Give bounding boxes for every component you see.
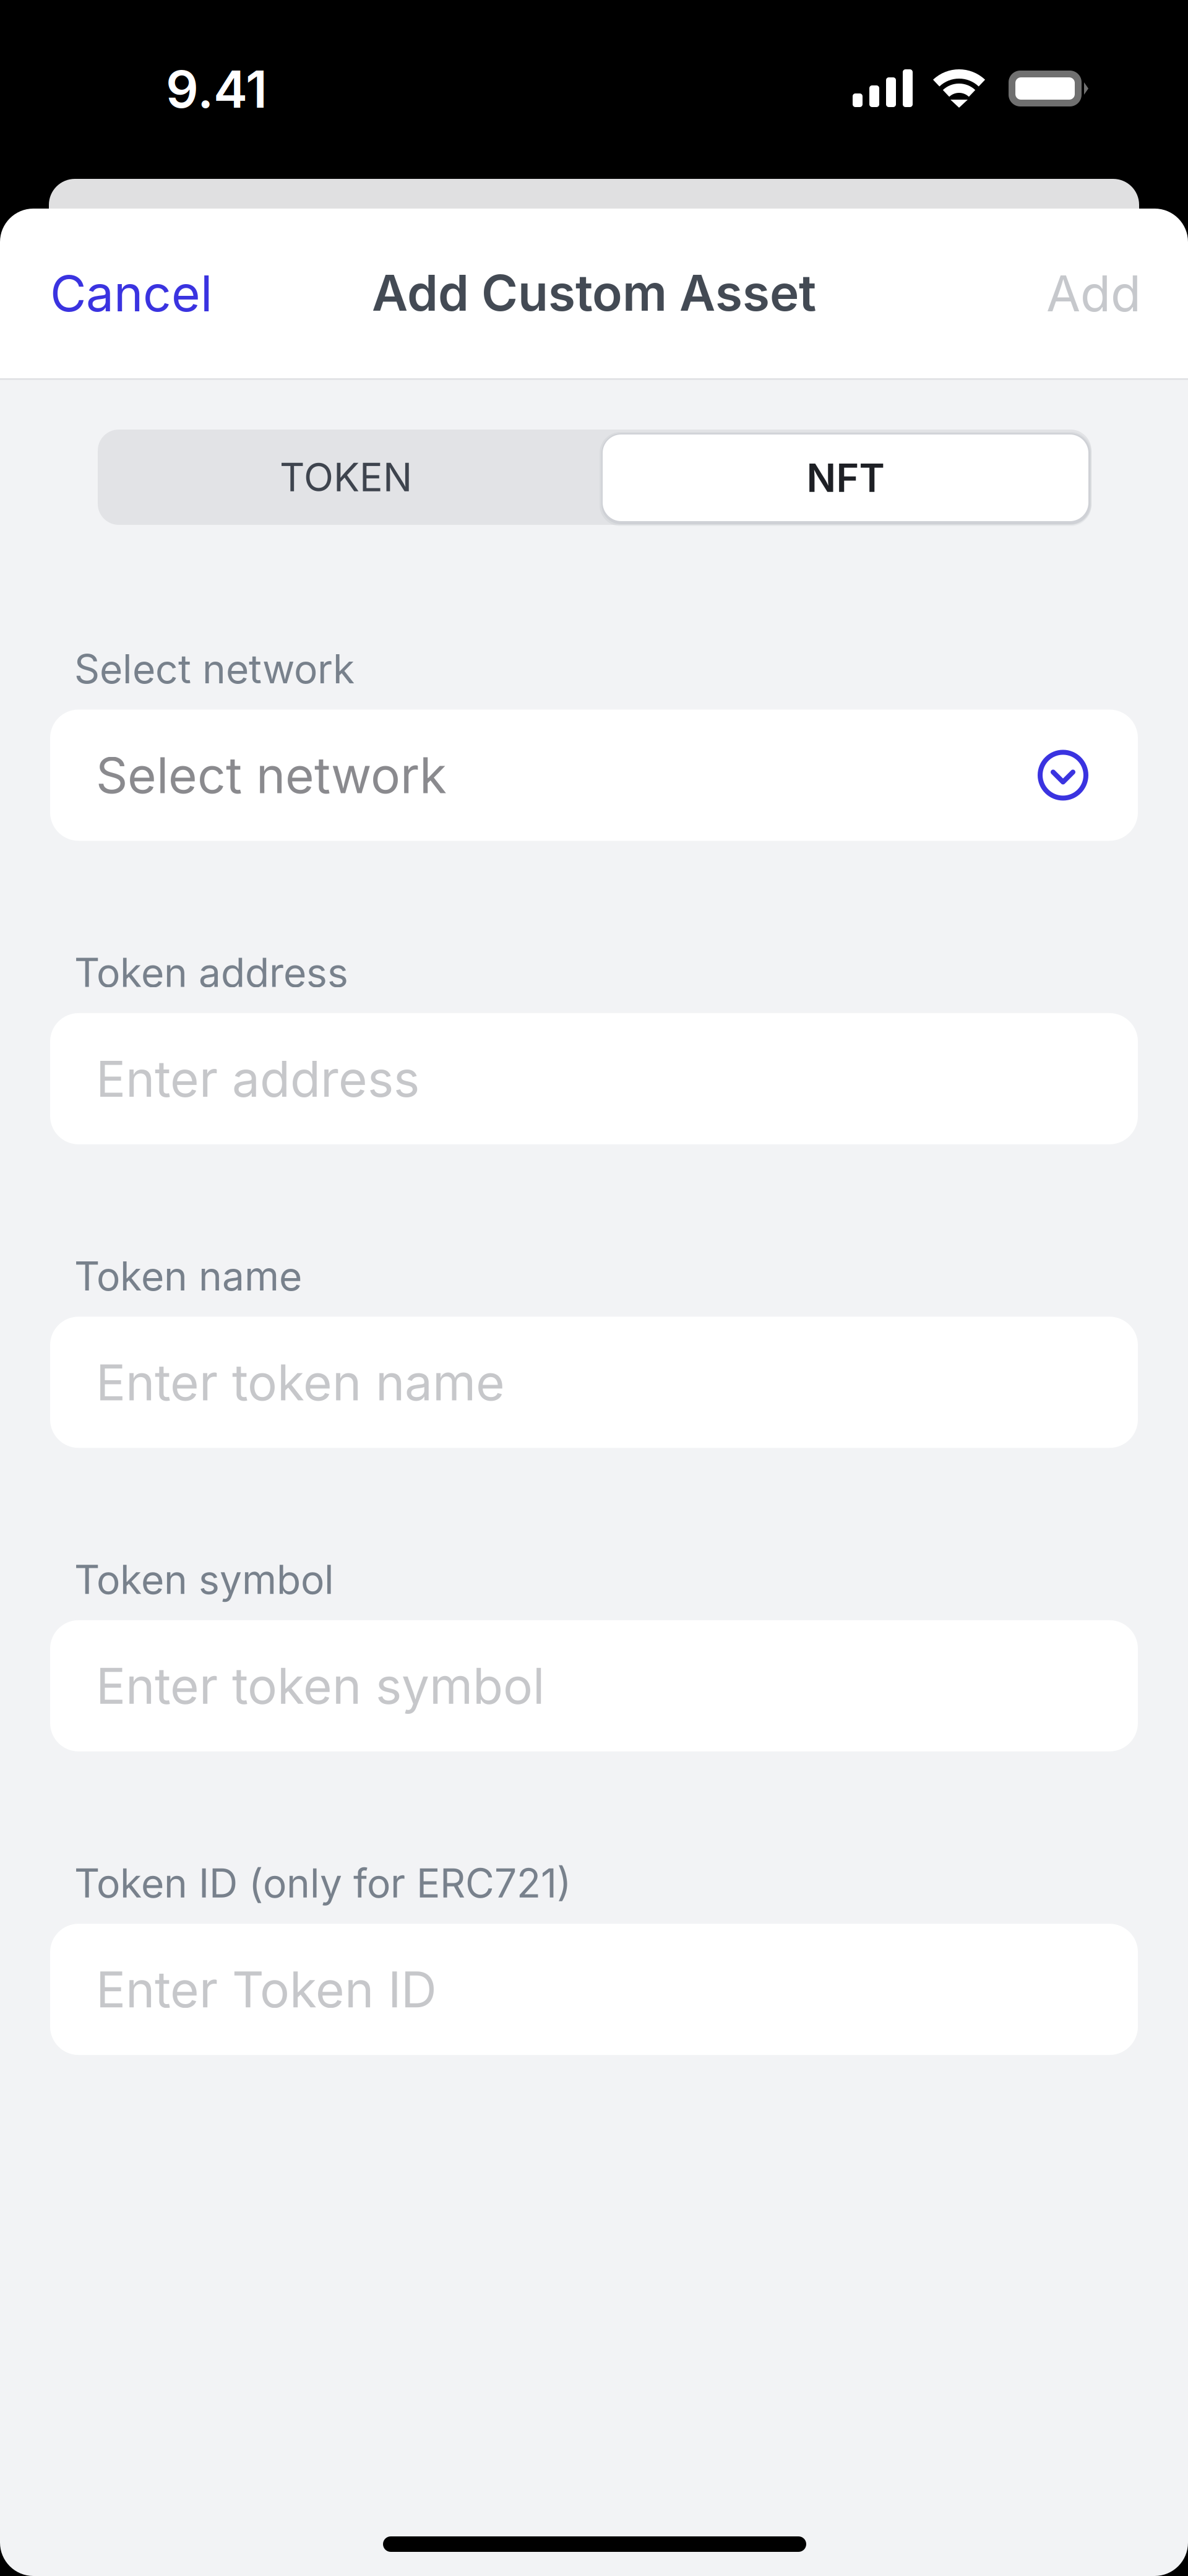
staticText: Select network: [96, 745, 447, 805]
staticText: Token address: [74, 948, 348, 996]
staticText: Enter token symbol: [96, 1656, 544, 1716]
button[interactable]: Add: [1038, 245, 1150, 342]
button[interactable]: Enter token symbol: [50, 1620, 1138, 1751]
staticText: TOKEN: [280, 454, 412, 501]
staticText: Token ID (only for ERC721): [74, 1859, 571, 1907]
staticText: Add: [1046, 263, 1141, 323]
button[interactable]: Cancel: [41, 245, 221, 342]
staticText: Add Custom Asset: [372, 263, 816, 323]
staticText: Enter token name: [96, 1352, 505, 1412]
button[interactable]: Enter token name: [50, 1317, 1138, 1448]
staticText: Token name: [74, 1252, 302, 1300]
staticText: 9.41: [166, 58, 267, 120]
button[interactable]: Enter Token ID: [50, 1924, 1138, 2055]
staticText: Cancel: [50, 263, 212, 323]
button[interactable]: Enter address: [50, 1013, 1138, 1144]
staticText: NFT: [807, 454, 885, 501]
staticText: Token symbol: [74, 1556, 334, 1603]
button[interactable]: Select network: [50, 710, 1138, 841]
button[interactable]: NFT: [603, 434, 1088, 521]
staticText: Select network: [74, 645, 355, 693]
staticText: Enter Token ID: [96, 1959, 437, 2019]
staticText: Enter address: [96, 1049, 420, 1109]
button[interactable]: TOKEN: [98, 430, 594, 525]
